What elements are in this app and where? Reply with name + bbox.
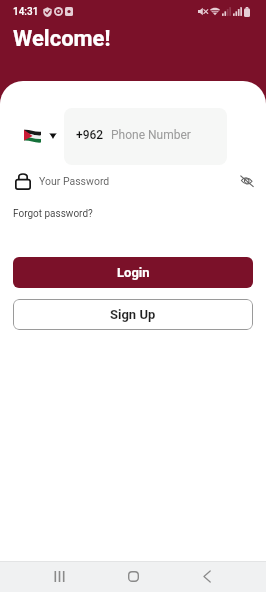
staticText: Sign Up [110, 307, 156, 322]
staticText: 14:31 [13, 6, 39, 18]
button[interactable]: Forgot password? [13, 208, 93, 220]
button[interactable]: Recents [44, 562, 74, 592]
button[interactable]: Your Password [39, 175, 110, 187]
button[interactable]: Login [13, 257, 253, 288]
button[interactable]: Sign Up [13, 299, 253, 330]
button[interactable]: Show password [239, 173, 255, 189]
staticText: Phone Number [111, 128, 191, 142]
staticText: Welcome! [13, 26, 111, 52]
button[interactable]: Back [192, 562, 222, 592]
staticText: +962 [76, 128, 104, 142]
button[interactable]: Select country code [24, 123, 57, 149]
button[interactable]: +962 [64, 108, 227, 165]
button[interactable]: Home [118, 562, 148, 592]
staticText: Login [117, 265, 150, 280]
